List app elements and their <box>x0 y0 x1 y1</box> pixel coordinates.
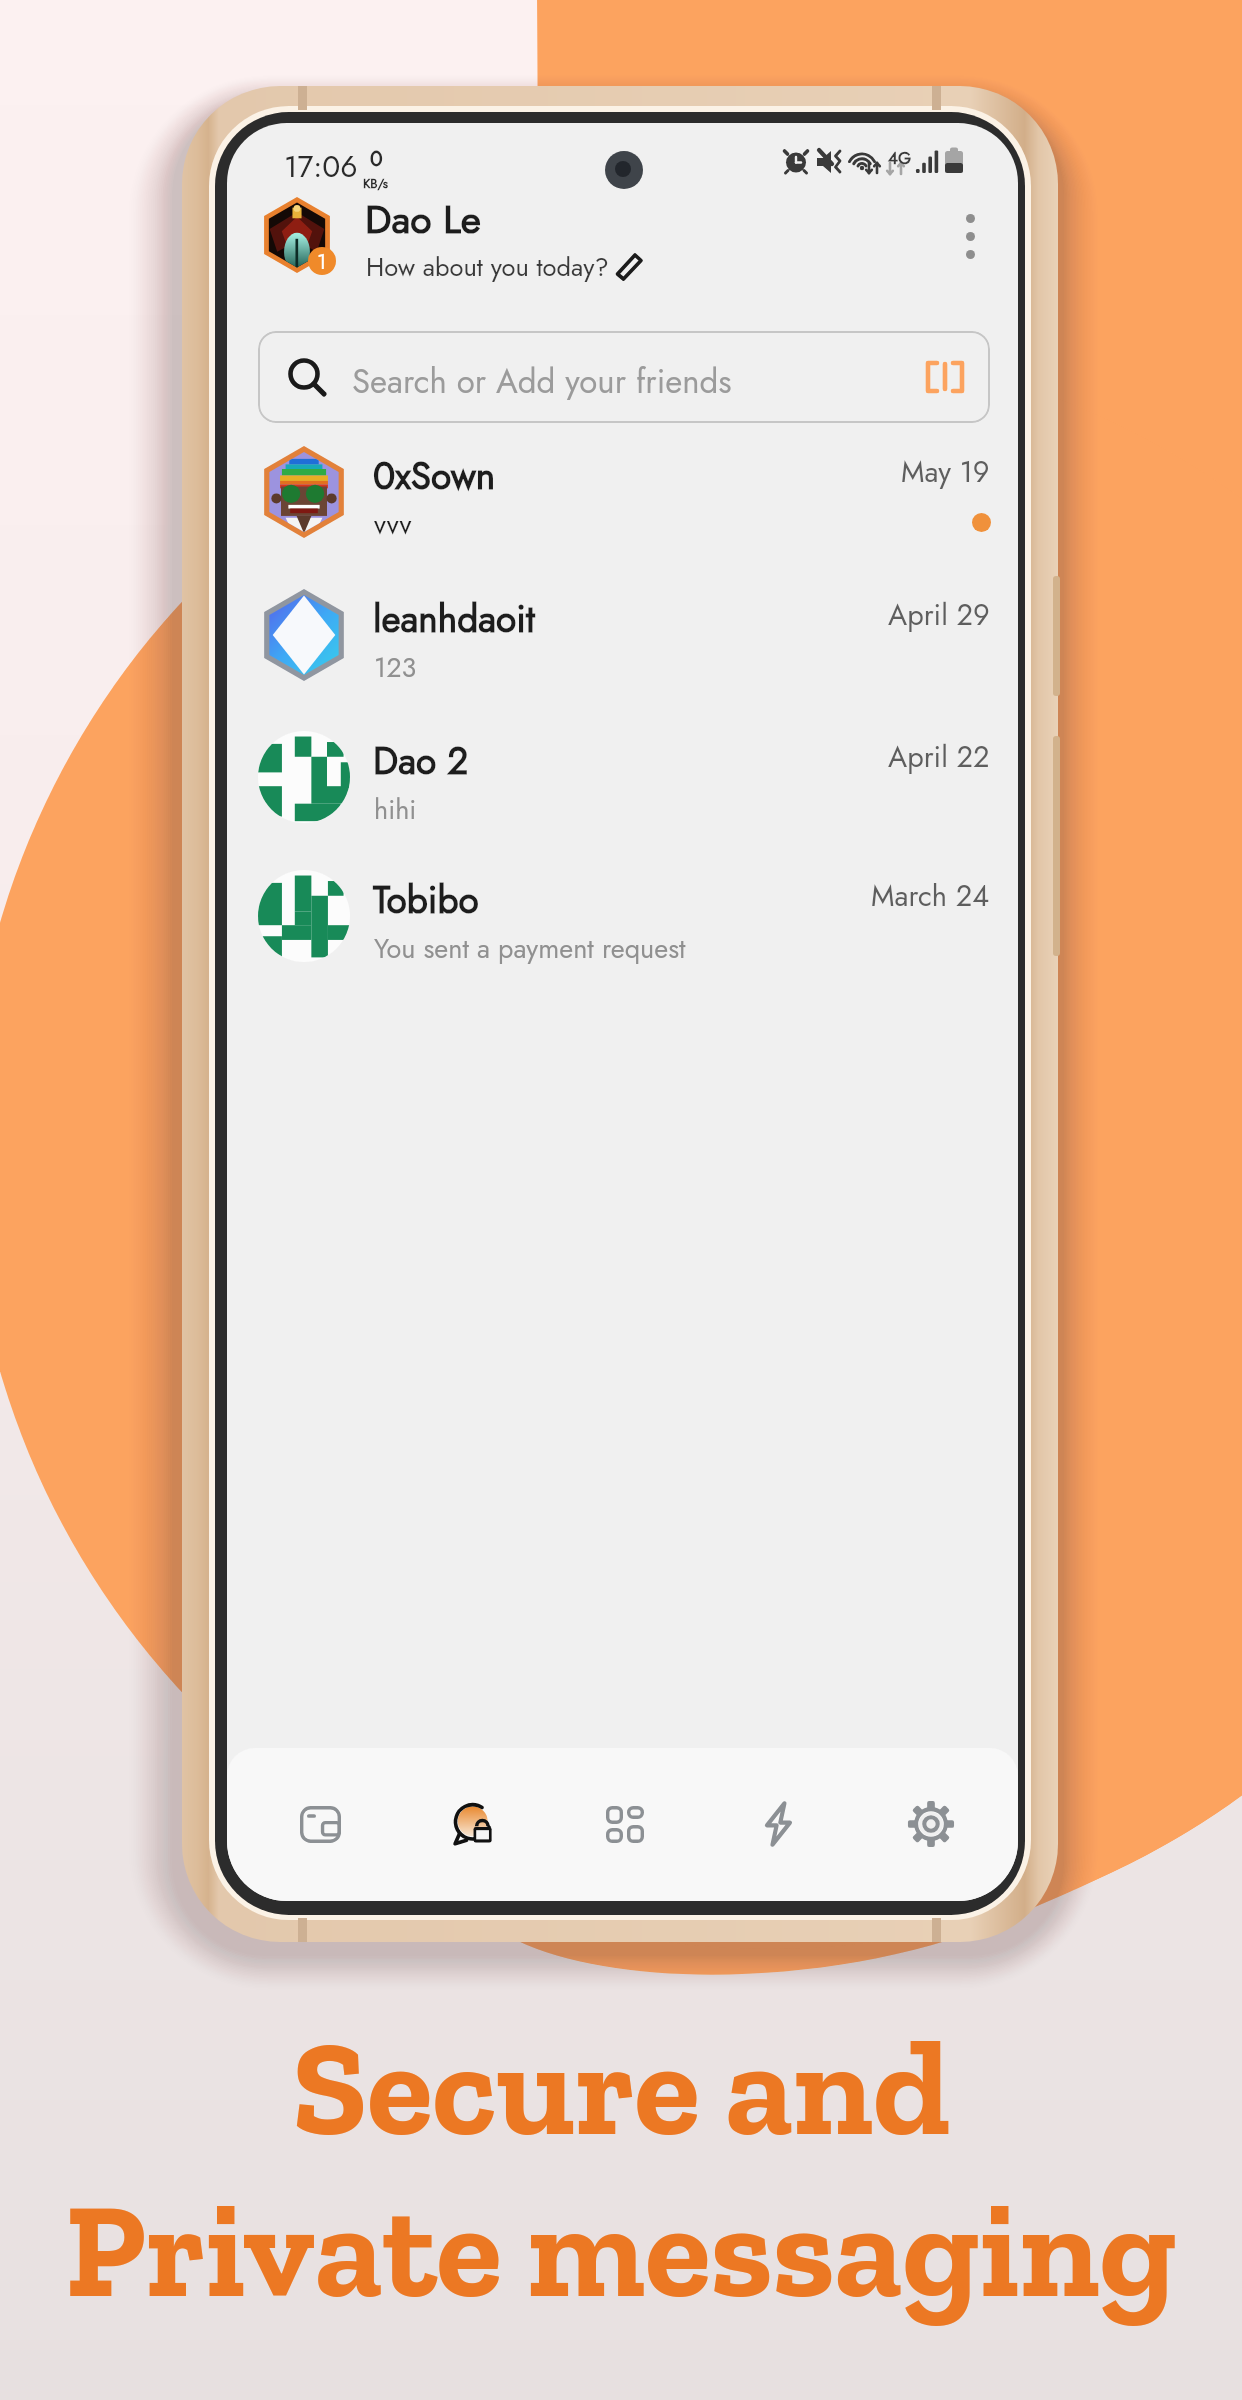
staticText: How about you today? <box>366 249 609 286</box>
staticText: Tobibo <box>373 873 479 926</box>
staticText: You sent a payment request <box>374 929 686 968</box>
staticText: Secure and <box>292 2007 951 2169</box>
button[interactable]: Activity <box>733 1779 823 1869</box>
staticText: leanhdaoit <box>373 592 535 645</box>
staticText: 17:06 <box>284 145 358 188</box>
button[interactable]: leanhdaoit <box>240 564 1010 706</box>
staticText: KB/s <box>363 174 389 193</box>
staticText: 4G <box>888 146 912 171</box>
staticText: March 24 <box>871 875 990 917</box>
button[interactable]: Tobibo <box>240 845 1010 987</box>
staticText: 123 <box>374 648 417 687</box>
other: Scan code <box>922 355 970 403</box>
staticText: Private messaging <box>65 2169 1177 2331</box>
button[interactable]: 0xSown <box>240 421 1010 563</box>
button[interactable]: More options <box>947 200 993 272</box>
staticText: Search or Add your friends <box>352 358 732 406</box>
button[interactable]: Apps <box>580 1779 670 1869</box>
staticText: Dao 2 <box>373 734 469 787</box>
button[interactable]: Dao 2 <box>240 706 1010 848</box>
staticText: April 29 <box>888 594 990 636</box>
staticText: Dao Le <box>365 191 481 247</box>
staticText: vvv <box>374 505 412 544</box>
button[interactable]: Search or Add your friends <box>258 331 990 423</box>
button[interactable]: Profile <box>259 197 335 273</box>
button[interactable]: Wallet <box>275 1779 365 1869</box>
button[interactable]: Edit status <box>612 249 650 287</box>
staticText: April 22 <box>888 736 990 778</box>
staticText: 0xSown <box>373 449 496 502</box>
staticText: 0 <box>370 144 383 174</box>
button[interactable]: Chats <box>429 1779 519 1869</box>
staticText: May 19 <box>901 451 990 493</box>
button[interactable]: Settings <box>886 1779 976 1869</box>
staticText: hihi <box>374 790 417 829</box>
staticText: 1 <box>317 247 327 275</box>
